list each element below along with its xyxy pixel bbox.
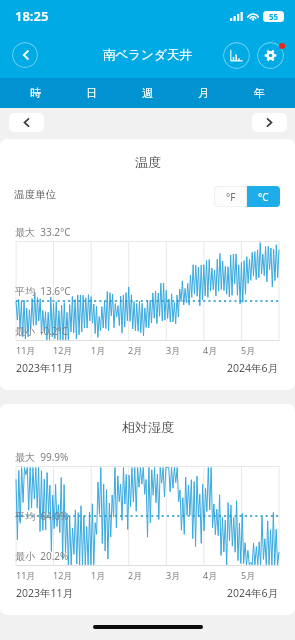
staticText: 2023年11月	[16, 361, 74, 375]
staticText: 12月	[53, 344, 73, 356]
button[interactable]: 日	[63, 78, 119, 108]
button[interactable]: Next period	[252, 113, 287, 132]
button[interactable]: Back	[12, 42, 38, 68]
staticText: 1月	[91, 569, 106, 581]
staticText: 温度	[135, 154, 161, 170]
staticText: 4月	[203, 569, 218, 581]
button[interactable]: °C	[247, 186, 280, 207]
staticText: °C	[258, 190, 269, 204]
staticText: 2024年6月	[227, 361, 279, 375]
staticText: 4月	[203, 344, 218, 356]
button[interactable]: °F	[215, 187, 246, 206]
button[interactable]: Statistics	[223, 42, 250, 69]
staticText: 5月	[241, 344, 256, 356]
staticText: 12月	[53, 569, 73, 581]
staticText: 月	[198, 86, 209, 100]
staticText: 相対湿度	[122, 419, 174, 435]
staticText: 3月	[166, 569, 181, 581]
staticText: 最大 33.2°C	[15, 225, 71, 239]
staticText: 日	[86, 86, 97, 100]
staticText: 11月	[16, 344, 36, 356]
staticText: 南ベランダ天井	[103, 47, 192, 63]
staticText: °F	[226, 190, 236, 204]
staticText: 温度単位	[14, 188, 56, 201]
staticText: 平均 13.6°C	[15, 284, 71, 298]
button[interactable]: Previous period	[9, 113, 44, 132]
button[interactable]: 時	[8, 78, 63, 108]
staticText: 2月	[128, 344, 143, 356]
staticText: 最大 99.9%	[15, 450, 69, 464]
staticText: 55	[269, 11, 279, 22]
staticText: 3月	[166, 344, 181, 356]
staticText: 2024年6月	[227, 586, 279, 600]
staticText: 2023年11月	[16, 586, 74, 600]
staticText: 最小 20.2%	[15, 549, 69, 563]
staticText: 2月	[128, 569, 143, 581]
staticText: 年	[254, 86, 265, 100]
staticText: 週	[142, 86, 153, 100]
button[interactable]: 月	[175, 78, 231, 108]
button[interactable]: 週	[119, 78, 175, 108]
staticText: 時	[30, 86, 41, 100]
staticText: 18:25	[15, 7, 49, 25]
staticText: 11月	[16, 569, 36, 581]
staticText: 5月	[241, 569, 256, 581]
staticText: 1月	[91, 344, 106, 356]
button[interactable]: 年	[231, 78, 287, 108]
staticText: 平均 64.0%	[15, 509, 69, 523]
button[interactable]: Settings	[257, 42, 284, 69]
staticText: 最小 -0.2°C	[15, 324, 69, 338]
